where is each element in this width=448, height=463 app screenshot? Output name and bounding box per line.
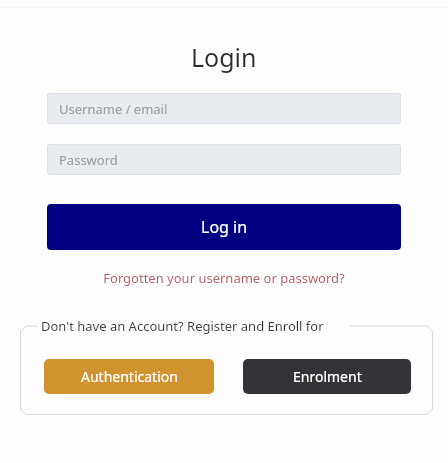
button[interactable]: Authentication: [44, 359, 214, 394]
staticText: Login: [191, 40, 257, 74]
staticText: Log in: [201, 216, 248, 238]
button[interactable]: Username / email: [47, 93, 401, 124]
button[interactable]: Log in: [47, 204, 401, 250]
staticText: Authentication: [81, 367, 178, 386]
button[interactable]: Enrolment: [243, 359, 411, 394]
button[interactable]: Password: [47, 144, 401, 175]
staticText: Password: [59, 151, 118, 169]
staticText: Enrolment: [293, 367, 362, 386]
staticText: Username / email: [59, 100, 168, 118]
staticText: Forgotten your username or password?: [103, 269, 345, 287]
staticText: Don't have an Account? Register and Enro…: [41, 317, 324, 335]
button[interactable]: Forgotten your username or password?: [99, 267, 349, 289]
